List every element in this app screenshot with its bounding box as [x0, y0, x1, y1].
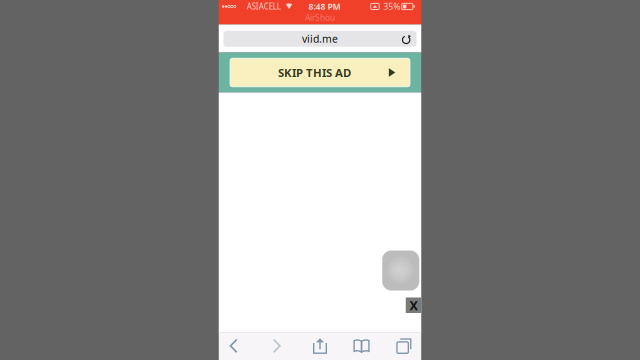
button[interactable]: Reload — [398, 32, 414, 46]
staticText: AirShou — [305, 12, 335, 23]
button[interactable]: Close — [406, 297, 421, 313]
staticText: X — [409, 297, 417, 314]
staticText: 8:48 PM — [308, 1, 340, 12]
staticText: viid.me — [302, 32, 338, 46]
button[interactable]: Bookmarks — [346, 332, 380, 359]
button[interactable]: Forward — [260, 332, 294, 359]
button[interactable]: SKIP THIS AD — [219, 58, 421, 86]
button[interactable]: Tabs — [389, 332, 423, 359]
staticText: SKIP THIS AD — [278, 65, 351, 80]
button[interactable]: Share — [303, 332, 337, 359]
button[interactable]: Back — [217, 332, 251, 359]
button[interactable]: Recorder — [382, 250, 419, 290]
staticText: ASIACELL — [247, 1, 281, 12]
staticText: 35% — [383, 1, 400, 12]
